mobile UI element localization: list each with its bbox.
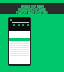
button[interactable] xyxy=(9,47,30,49)
button[interactable] xyxy=(9,53,30,55)
button[interactable] xyxy=(9,45,30,47)
button[interactable] xyxy=(9,51,30,53)
button[interactable]: App preview xyxy=(8,17,31,66)
button[interactable] xyxy=(9,41,30,43)
staticText: WORLD CUP NEWS xyxy=(21,5,44,8)
button[interactable] xyxy=(9,55,30,57)
staticText: HIGHLIGHTS OF GAME xyxy=(18,8,46,11)
staticText: PLAYOFF MATCH FIXTURE xyxy=(16,11,48,14)
button[interactable] xyxy=(9,43,30,45)
button[interactable] xyxy=(9,49,30,51)
